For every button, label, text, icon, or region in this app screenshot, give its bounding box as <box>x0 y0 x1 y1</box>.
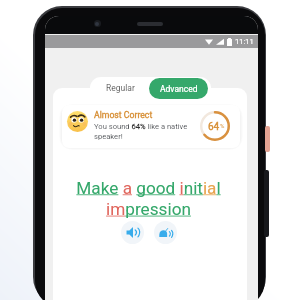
staticText: Make a good initial impression <box>58 178 239 219</box>
staticText: 11:11 <box>235 37 254 46</box>
staticText: % <box>220 122 225 129</box>
button[interactable]: Almost Correct <box>62 105 240 148</box>
button[interactable]: Regular <box>90 77 150 99</box>
button[interactable]: Advanced <box>149 78 208 99</box>
staticText: Almost Correct <box>94 110 153 120</box>
staticText: Advanced <box>160 84 198 94</box>
staticText: Regular <box>106 83 135 93</box>
button[interactable]: Play audio <box>121 221 144 244</box>
button[interactable]: Play slow audio <box>154 221 177 244</box>
staticText: 64 <box>208 121 220 133</box>
staticText: You sound 64% like a native speaker! <box>94 122 196 141</box>
